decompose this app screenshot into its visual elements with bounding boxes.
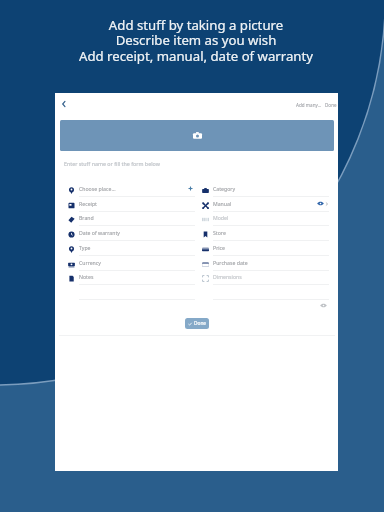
- button[interactable]: Category: [197, 183, 331, 198]
- staticText: Type: [79, 244, 91, 251]
- button[interactable]: Receipt: [63, 198, 197, 212]
- button[interactable]: Price: [197, 242, 331, 257]
- staticText: Brand: [79, 214, 94, 221]
- staticText: Category: [213, 185, 236, 192]
- button[interactable]: Brand: [63, 212, 197, 227]
- staticText: Add many...: [296, 102, 322, 108]
- staticText: Add stuff by taking a picture Describe i…: [4, 16, 384, 65]
- staticText: Model: [213, 214, 229, 221]
- button[interactable]: Done: [324, 99, 338, 111]
- button[interactable]: Done: [185, 318, 209, 329]
- button[interactable]: [197, 286, 331, 301]
- button[interactable]: Take a picture: [60, 120, 334, 151]
- staticText: Dimensions: [213, 273, 242, 280]
- button[interactable]: [63, 286, 197, 301]
- button[interactable]: Show more: [317, 299, 329, 311]
- staticText: Purchase date: [213, 259, 248, 266]
- button[interactable]: Manual: [197, 198, 331, 212]
- staticText: Currency: [79, 259, 101, 266]
- button[interactable]: Back: [56, 96, 72, 112]
- button[interactable]: Notes: [63, 271, 197, 286]
- staticText: Enter stuff name or fill the form below: [64, 160, 160, 167]
- button[interactable]: Model: [197, 212, 331, 227]
- button[interactable]: Dimensions: [197, 271, 331, 286]
- staticText: Receipt: [79, 200, 97, 207]
- staticText: Date of warranty: [79, 229, 120, 236]
- button[interactable]: Add many...: [295, 99, 323, 111]
- staticText: Done: [325, 102, 337, 108]
- button[interactable]: Choose place...: [63, 183, 197, 198]
- staticText: Notes: [79, 273, 94, 280]
- button[interactable]: Purchase date: [197, 257, 331, 271]
- staticText: Manual: [213, 200, 232, 207]
- button[interactable]: Date of warranty: [63, 227, 197, 242]
- staticText: Choose place...: [79, 185, 116, 192]
- button[interactable]: Currency: [63, 257, 197, 271]
- button[interactable]: Store: [197, 227, 331, 242]
- staticText: Store: [213, 229, 226, 236]
- button[interactable]: Type: [63, 242, 197, 257]
- staticText: Price: [213, 244, 226, 251]
- staticText: Done: [194, 320, 207, 327]
